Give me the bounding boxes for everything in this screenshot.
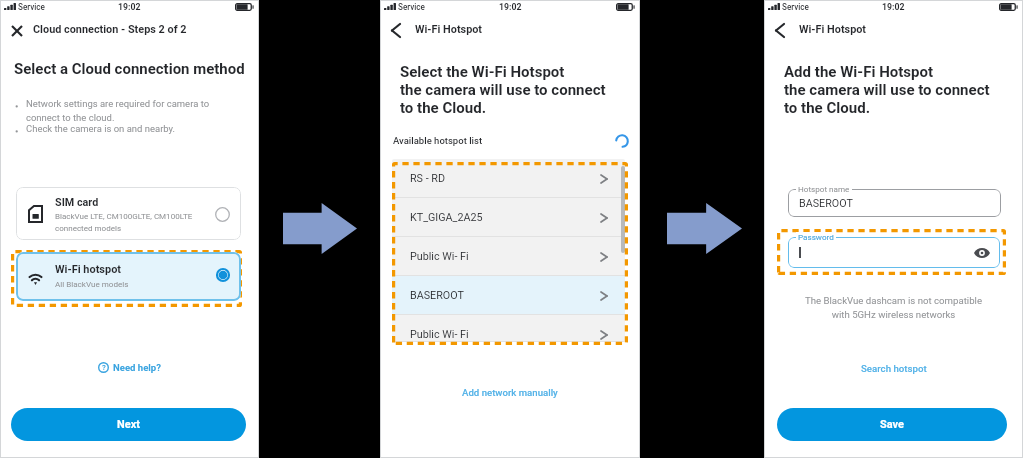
button[interactable]: Close [5, 19, 28, 42]
staticText: BlackVue LTE, CM100GLTE, CM100LTE connec… [55, 212, 193, 233]
staticText: KT_GIGA_2A25 [410, 211, 483, 224]
staticText: BASEROOT [410, 289, 464, 302]
button[interactable]: BASEROOT [392, 276, 625, 315]
staticText: Add network manually [462, 387, 558, 398]
staticText: Service [398, 2, 425, 12]
staticText: Network settings are required for camera… [26, 98, 210, 123]
staticText: 19:02 [882, 2, 905, 12]
button[interactable]: Search hotspot [849, 358, 939, 378]
button[interactable]: Public Wi- Fi [392, 237, 625, 276]
staticText: 19:02 [118, 2, 141, 12]
staticText: 19:02 [499, 2, 522, 12]
staticText: Search hotspot [861, 363, 927, 374]
button[interactable]: Save [777, 408, 1007, 441]
staticText: ? [102, 363, 106, 372]
button[interactable]: Public Wi- Fi [392, 315, 625, 342]
staticText: Service [18, 2, 45, 12]
button[interactable]: RS - RD [392, 159, 625, 198]
staticText: All BlackVue models [55, 279, 129, 288]
staticText: Select a Cloud connection method [14, 60, 245, 78]
staticText: Next [117, 418, 140, 431]
staticText: Wi-Fi Hotspot [799, 23, 867, 36]
staticText: Add the Wi-Fi Hotspot the camera will us… [784, 63, 990, 117]
button[interactable]: ? [93, 356, 165, 378]
staticText: Password [798, 232, 834, 242]
staticText: RS - RD [410, 172, 445, 185]
staticText: Select the Wi-Fi Hotspot the camera will… [400, 63, 606, 117]
staticText: Save [880, 418, 904, 431]
staticText: Check the camera is on and nearby. [26, 123, 176, 134]
staticText: BASEROOT [799, 197, 853, 210]
staticText: Cloud connection - Steps 2 of 2 [33, 23, 187, 36]
button[interactable]: Wi-Fi hotspot [16, 252, 241, 301]
staticText: SIM card [55, 196, 99, 209]
button[interactable]: BASEROOT [788, 189, 1001, 217]
staticText: Hotspot name [798, 184, 850, 194]
staticText: Available hotspot list [393, 135, 483, 146]
staticText: Service [782, 2, 809, 12]
button[interactable] [788, 237, 1000, 268]
staticText: Wi-Fi hotspot [55, 263, 122, 276]
staticText: Public Wi- Fi [410, 250, 469, 263]
button[interactable]: Back [768, 18, 792, 42]
button[interactable]: SIM card [16, 187, 241, 240]
staticText: Wi-Fi Hotspot [415, 23, 483, 36]
staticText: The BlackVue dashcam is not compatible w… [764, 295, 1023, 321]
staticText: Need help? [113, 362, 161, 373]
button[interactable]: Next [11, 408, 246, 441]
button[interactable]: Back [384, 18, 408, 42]
button[interactable]: KT_GIGA_2A25 [392, 198, 625, 237]
button[interactable]: Add network manually [450, 382, 570, 402]
staticText: Public Wi- Fi [410, 328, 469, 341]
